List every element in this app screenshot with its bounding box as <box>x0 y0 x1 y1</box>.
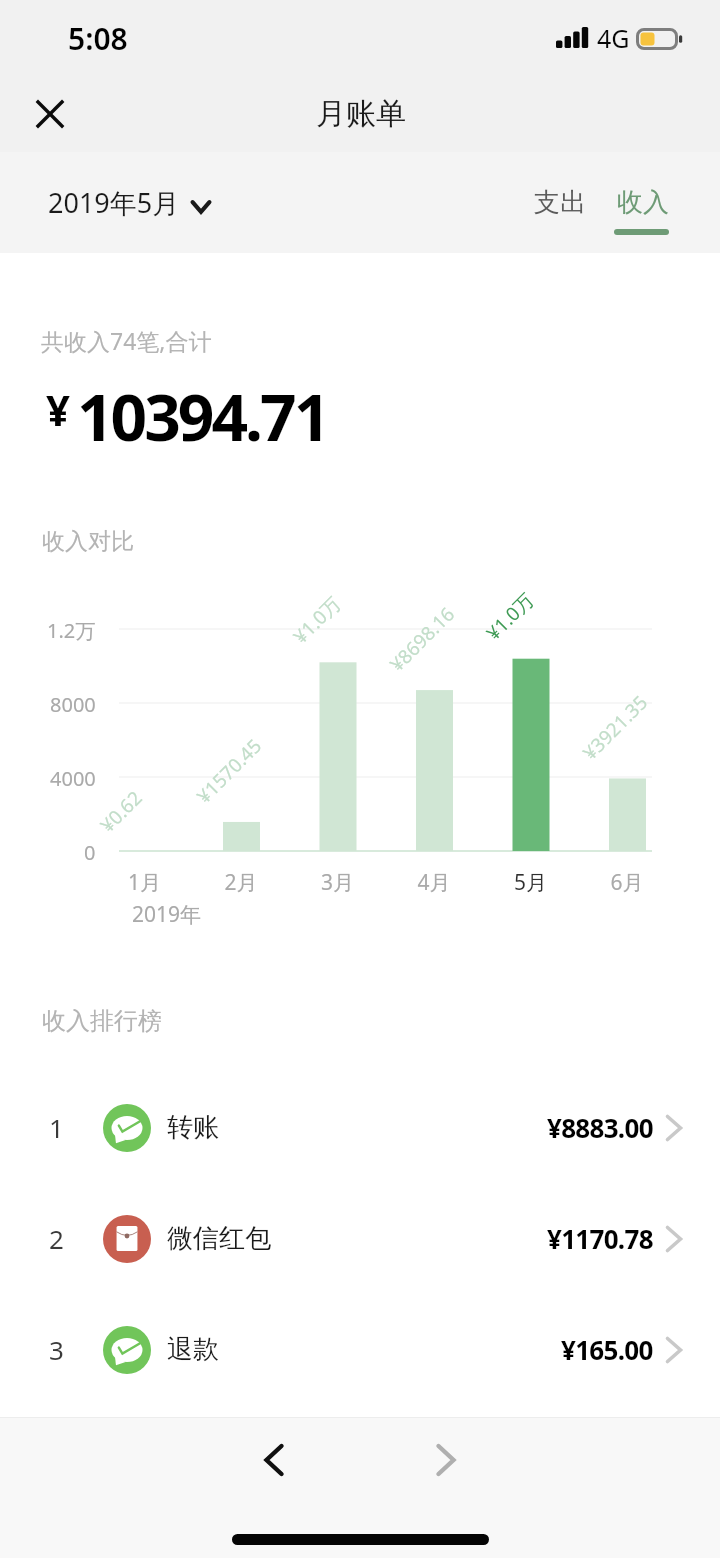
staticText: ¥165.00 <box>561 1332 653 1367</box>
staticText: ¥1170.78 <box>547 1221 653 1256</box>
button[interactable]: 2019年5月 <box>34 174 225 231</box>
button[interactable]: Next <box>416 1430 476 1490</box>
staticText: 微信红包 <box>167 1222 271 1255</box>
staticText: 转账 <box>167 1111 219 1144</box>
staticText: ¥8883.00 <box>547 1110 653 1145</box>
staticText: 1 <box>49 1110 64 1145</box>
staticText: 共收入74笔,合计 <box>41 325 212 356</box>
staticText: 2 <box>49 1221 64 1256</box>
staticText: 收入对比 <box>42 527 134 556</box>
staticText: ¥ <box>46 381 71 438</box>
button[interactable]: 1 <box>0 1072 720 1183</box>
staticText: 退款 <box>167 1333 219 1366</box>
staticText: 月账单 <box>316 95 406 133</box>
staticText: 支出 <box>534 186 586 219</box>
staticText: 3 <box>49 1332 64 1367</box>
button[interactable]: 支出 <box>524 174 596 231</box>
button[interactable]: Close <box>25 89 75 139</box>
staticText: 10394.71 <box>77 373 328 460</box>
staticText: 4G <box>597 21 630 55</box>
staticText: 收入 <box>617 186 669 219</box>
button[interactable]: 收入 <box>607 174 682 231</box>
staticText: 收入排行榜 <box>42 1006 162 1036</box>
staticText: 2019年5月 <box>48 184 180 221</box>
button[interactable]: 2 <box>0 1183 720 1294</box>
staticText: 5:08 <box>68 18 128 59</box>
button[interactable]: 3 <box>0 1294 720 1405</box>
button[interactable]: Previous <box>244 1430 304 1490</box>
